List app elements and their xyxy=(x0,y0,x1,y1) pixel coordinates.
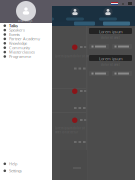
staticText: Lorem ipsum xyxy=(99,56,123,61)
button[interactable]: Events xyxy=(0,32,52,37)
button[interactable]: Speakers xyxy=(0,28,52,32)
staticText: Partner Academy xyxy=(9,36,40,41)
button[interactable]: Programme xyxy=(0,54,52,59)
button[interactable]: Action xyxy=(89,71,109,76)
button[interactable]: Help xyxy=(0,161,52,166)
staticText: dolor sit amet xyxy=(101,36,120,39)
button[interactable]: Settings xyxy=(0,168,52,173)
staticText: Knowledge xyxy=(9,40,27,46)
staticText: Talks xyxy=(9,23,18,28)
staticText: Events xyxy=(9,32,20,37)
button[interactable]: Partner Academy xyxy=(0,37,52,41)
staticText: Programme xyxy=(9,54,31,59)
staticText: Settings xyxy=(9,168,22,173)
button[interactable]: Action xyxy=(112,71,132,76)
button[interactable]: Action xyxy=(89,44,109,49)
button[interactable]: Community xyxy=(0,45,52,50)
staticText: Help xyxy=(9,161,17,166)
button[interactable]: Talks xyxy=(0,23,52,28)
staticText: Bram Buijs xyxy=(18,19,32,22)
button[interactable]: Action xyxy=(112,44,132,49)
staticText: Speakers xyxy=(9,27,25,33)
button[interactable]: Knowledge xyxy=(0,41,52,45)
staticText: Lorem ipsum dolor sit amet xyxy=(55,54,92,58)
staticText: Lorem ipsum xyxy=(99,29,123,34)
staticText: Community xyxy=(9,45,30,50)
staticText: Masterclasses xyxy=(9,49,35,55)
button[interactable]: Masterclasses xyxy=(0,50,52,54)
staticText: dolor sit amet xyxy=(101,63,120,66)
